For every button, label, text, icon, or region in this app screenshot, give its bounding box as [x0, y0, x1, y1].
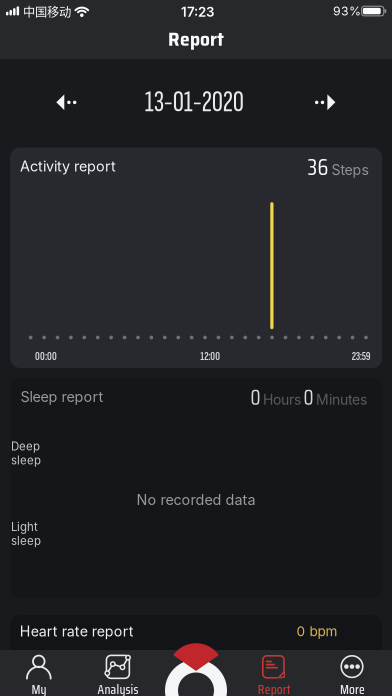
staticText: No recorded data [136, 491, 255, 508]
staticText: 23:59 [352, 349, 371, 364]
staticText: Deep sleep [11, 439, 41, 467]
staticText: Report [258, 679, 291, 696]
staticText: 93% [333, 4, 361, 18]
staticText: 0 bpm [296, 623, 337, 639]
staticText: More [340, 679, 365, 696]
staticText: Minutes [316, 391, 367, 408]
staticText: Hours [263, 391, 301, 408]
staticText: Activity report [20, 158, 116, 175]
staticText: 0 [303, 381, 313, 414]
staticText: 12:00 [200, 349, 220, 364]
staticText: Heart rate report [20, 623, 134, 640]
staticText: Analysis [97, 679, 138, 696]
staticText: My [31, 679, 46, 696]
staticText: Report [168, 24, 224, 54]
staticText: 13-01-2020 [145, 83, 244, 121]
staticText: Light sleep [11, 520, 41, 548]
staticText: 17:23 [181, 4, 214, 20]
staticText: Steps [331, 161, 368, 178]
staticText: 0 [250, 381, 260, 414]
staticText: 00:00 [35, 349, 57, 364]
staticText: 36 [307, 149, 328, 185]
staticText: 中国移动 [23, 2, 71, 20]
staticText: Sleep report [20, 388, 103, 405]
